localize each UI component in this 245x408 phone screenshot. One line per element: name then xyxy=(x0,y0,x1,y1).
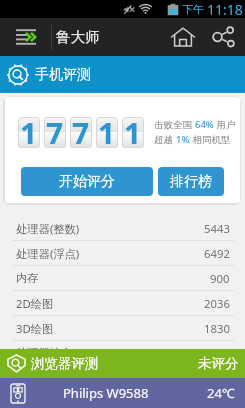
button[interactable]: 手机评测 xyxy=(0,56,245,93)
staticText: 7 xyxy=(46,113,64,144)
button[interactable]: 内存 xyxy=(0,266,245,290)
staticText: 浏览器评测 xyxy=(31,355,99,372)
staticText: 超越 xyxy=(154,133,176,146)
button[interactable]: 处理器(浮点) xyxy=(0,241,245,265)
staticText: 5443 xyxy=(204,221,230,236)
button[interactable]: 处理器综合 xyxy=(0,341,245,365)
staticText: 用户 xyxy=(214,118,236,131)
button[interactable]: 3D绘图 xyxy=(0,316,245,340)
button[interactable]: 浏览器评测 xyxy=(0,349,245,378)
button[interactable]: 开始评分 xyxy=(21,167,153,196)
button[interactable]: 2D绘图 xyxy=(0,291,245,315)
staticText: 手机评测 xyxy=(35,66,91,84)
staticText: 900 xyxy=(210,271,230,286)
staticText: 64% xyxy=(195,118,214,131)
staticText: 1 xyxy=(20,113,38,144)
staticText: 处理器综合 xyxy=(16,346,73,360)
button[interactable]: Home xyxy=(163,18,203,56)
staticText: 处理器(浮点) xyxy=(16,246,80,261)
staticText: 1 xyxy=(124,113,142,144)
staticText: 6492 xyxy=(204,246,230,261)
staticText: 下午 xyxy=(182,2,204,16)
staticText: 击败全国 xyxy=(154,118,195,131)
staticText: 内存 xyxy=(16,271,39,285)
staticText: 处理器(整数) xyxy=(16,221,80,236)
staticText: 1 xyxy=(98,113,116,144)
staticText: 开始评分 xyxy=(59,173,115,191)
button[interactable]: 排行榜 xyxy=(158,167,224,196)
staticText: 1% xyxy=(176,133,190,146)
staticText: Philips W9588 xyxy=(63,384,149,402)
button[interactable]: 处理器(整数) xyxy=(0,216,245,240)
staticText: 7 xyxy=(72,113,90,144)
button[interactable]: Share xyxy=(203,18,243,56)
staticText: 未评分 xyxy=(198,355,239,372)
staticText: 24℃ xyxy=(207,384,235,402)
staticText: 排行榜 xyxy=(170,173,212,191)
staticText: 2036 xyxy=(204,296,230,311)
staticText: 相同机型 xyxy=(190,133,231,146)
staticText: 11:18 xyxy=(207,0,243,18)
staticText: 鲁大师 xyxy=(56,28,100,46)
staticText: 868 xyxy=(210,346,230,361)
staticText: 2D绘图 xyxy=(16,296,54,311)
staticText: 1830 xyxy=(204,321,230,336)
button[interactable]: Menu xyxy=(0,18,51,56)
staticText: 3D绘图 xyxy=(16,321,54,336)
